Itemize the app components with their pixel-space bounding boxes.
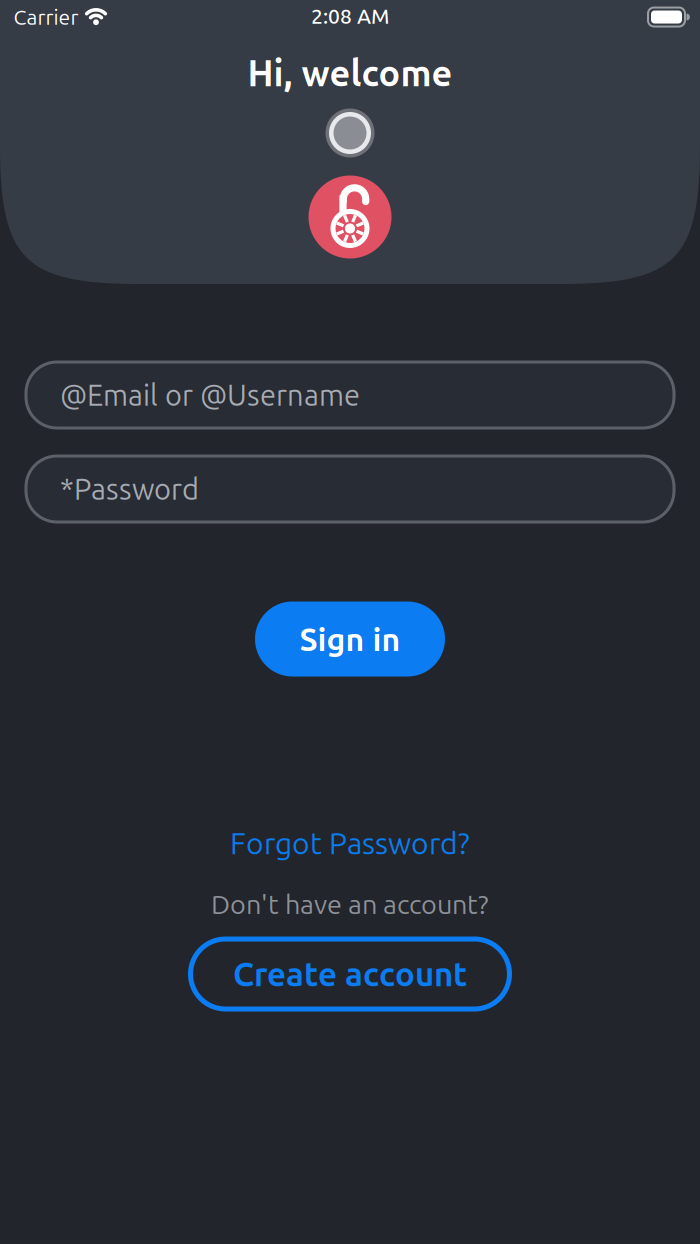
button[interactable]: @Email or @Username [26,362,674,428]
button[interactable]: *Password [26,456,674,522]
staticText: *Password [60,473,199,505]
button[interactable]: Forgot Password? [230,826,470,860]
staticText: Create account [233,955,467,992]
staticText: 2:08 AM [311,4,389,28]
staticText: Hi, welcome [247,53,452,93]
staticText: Don't have an account? [211,889,489,919]
button[interactable]: Sign in [255,601,445,676]
staticText: Carrier [13,5,78,29]
staticText: @Email or @Username [60,379,360,411]
staticText: Sign in [299,621,400,657]
button[interactable]: Create account [190,939,509,1009]
staticText: Forgot Password? [230,826,470,860]
